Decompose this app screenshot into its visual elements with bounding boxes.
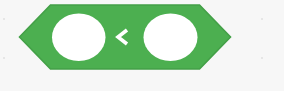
button[interactable]: Hexagon connector with two nodes [0, 0, 284, 91]
